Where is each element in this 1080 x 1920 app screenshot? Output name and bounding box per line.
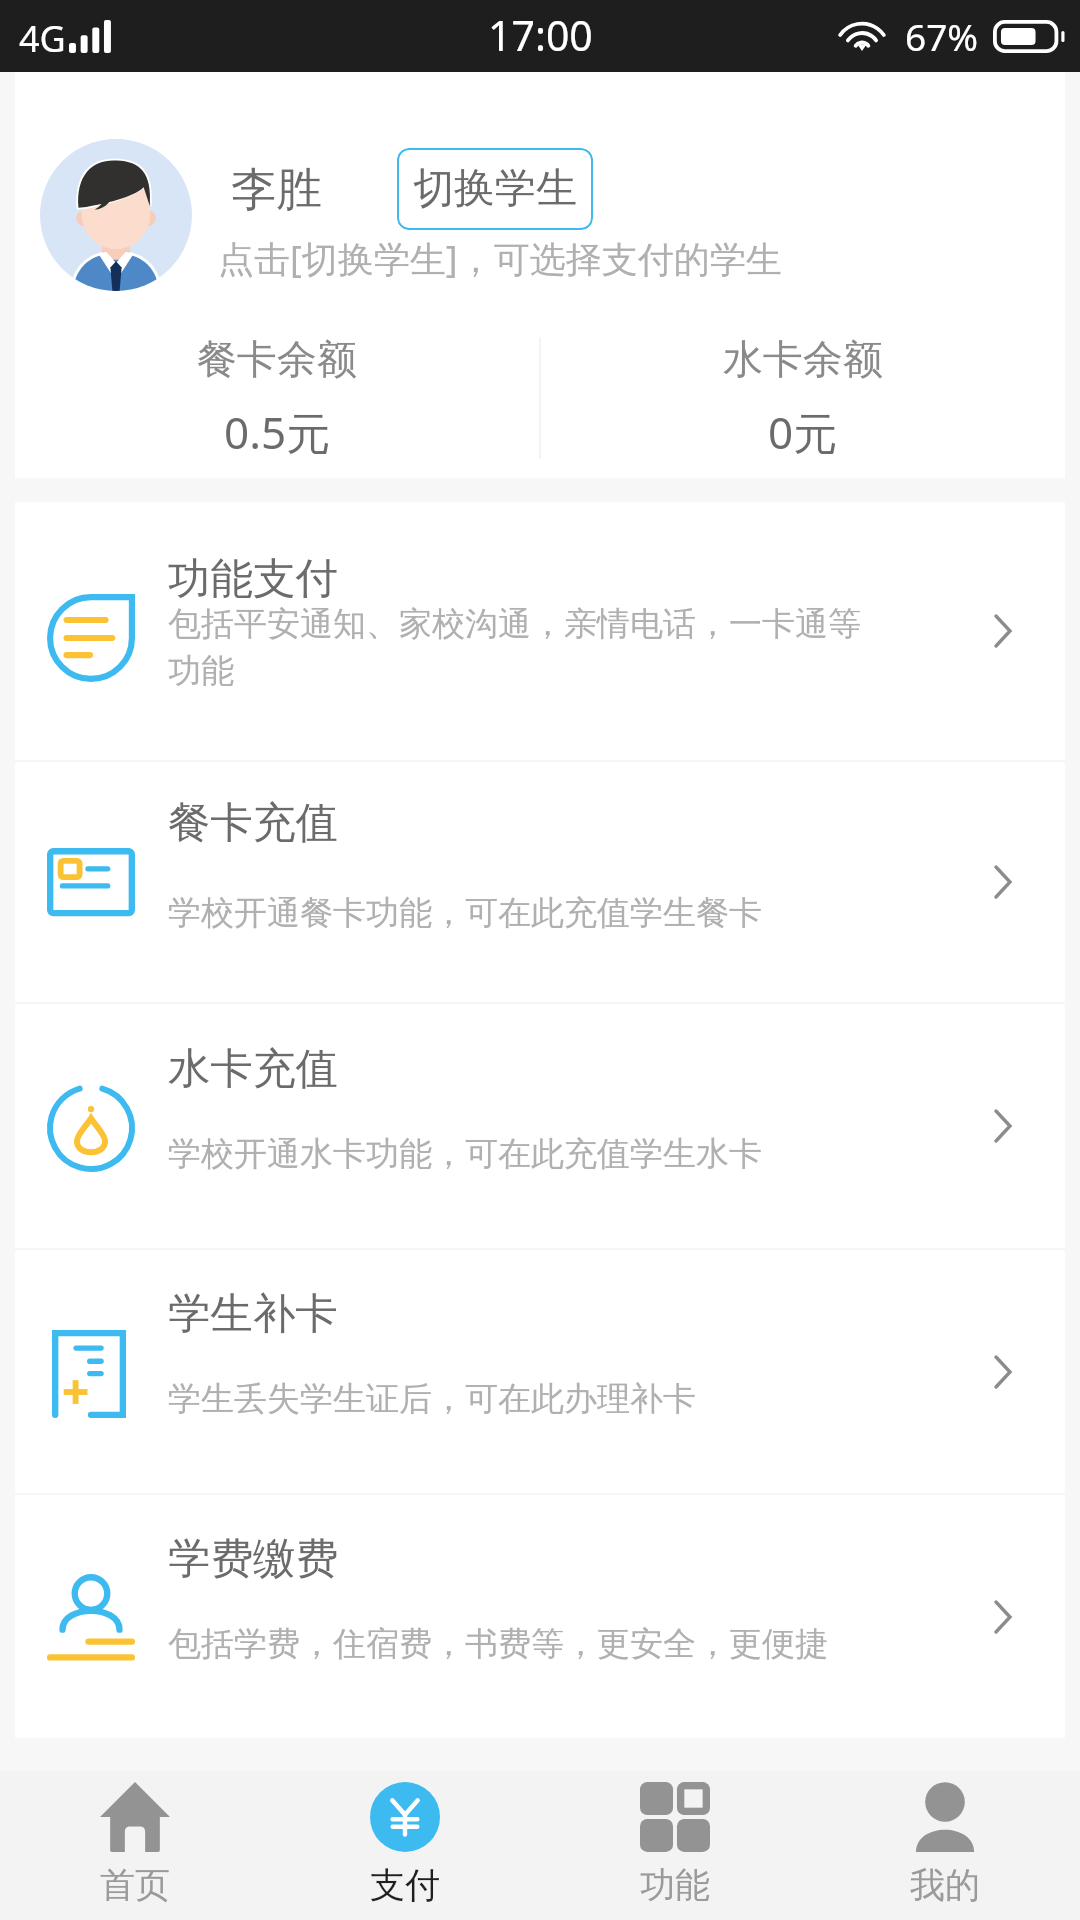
- other: 学费缴费: [994, 1600, 1012, 1634]
- staticText: 0.5元: [224, 402, 331, 462]
- staticText: 17:00: [488, 7, 593, 63]
- other: 支付: [370, 1782, 440, 1852]
- staticText: 学生丢失学生证后，可在此办理补卡: [168, 1378, 696, 1420]
- staticText: 学校开通餐卡功能，可在此充值学生餐卡: [168, 892, 762, 934]
- other: 功能: [640, 1782, 710, 1852]
- other: 我的: [910, 1782, 980, 1852]
- staticText: 学校开通水卡功能，可在此充值学生水卡: [168, 1133, 762, 1175]
- staticText: 包括学费，住宿费，书费等，更安全，更便捷: [168, 1623, 828, 1665]
- button[interactable]: 功能: [540, 1771, 810, 1920]
- staticText: 包括平安通知、家校沟通，亲情电话，一卡通等 功能: [168, 603, 861, 692]
- staticText: 点击[切换学生]，可选择支付的学生: [218, 234, 782, 283]
- staticText: 功能支付: [168, 552, 338, 606]
- staticText: 餐卡充值: [168, 796, 338, 850]
- button[interactable]: 学生补卡: [15, 1250, 1065, 1493]
- staticText: 功能: [640, 1863, 710, 1907]
- button[interactable]: 餐卡充值: [15, 762, 1065, 1002]
- staticText: 4G: [19, 14, 66, 63]
- button[interactable]: 学费缴费: [15, 1495, 1065, 1738]
- other: 餐卡充值: [994, 865, 1012, 899]
- other: 功能支付: [994, 614, 1012, 648]
- button[interactable]: 支付: [270, 1771, 540, 1920]
- staticText: 67%: [905, 11, 979, 61]
- staticText: 学费缴费: [168, 1532, 338, 1586]
- staticText: 学生补卡: [168, 1287, 338, 1341]
- staticText: 0元: [768, 402, 838, 462]
- button[interactable]: 切换学生: [397, 148, 593, 230]
- staticText: 水卡充值: [168, 1042, 338, 1096]
- staticText: 首页: [100, 1863, 170, 1907]
- button[interactable]: 水卡余额: [541, 318, 1065, 478]
- button[interactable]: 餐卡余额: [15, 318, 539, 478]
- staticText: 水卡余额: [723, 334, 883, 384]
- staticText: 切换学生: [413, 163, 577, 215]
- button[interactable]: 首页: [0, 1771, 270, 1920]
- staticText: 支付: [370, 1863, 440, 1907]
- staticText: 餐卡余额: [197, 334, 357, 384]
- other: 学生补卡: [994, 1355, 1012, 1389]
- other: 水卡充值: [994, 1109, 1012, 1143]
- button[interactable]: 功能支付: [15, 502, 1065, 760]
- other: 首页: [100, 1782, 170, 1852]
- staticText: 我的: [910, 1863, 980, 1907]
- button[interactable]: 水卡充值: [15, 1004, 1065, 1248]
- button[interactable]: 我的: [810, 1771, 1080, 1920]
- staticText: 李胜: [231, 161, 322, 218]
